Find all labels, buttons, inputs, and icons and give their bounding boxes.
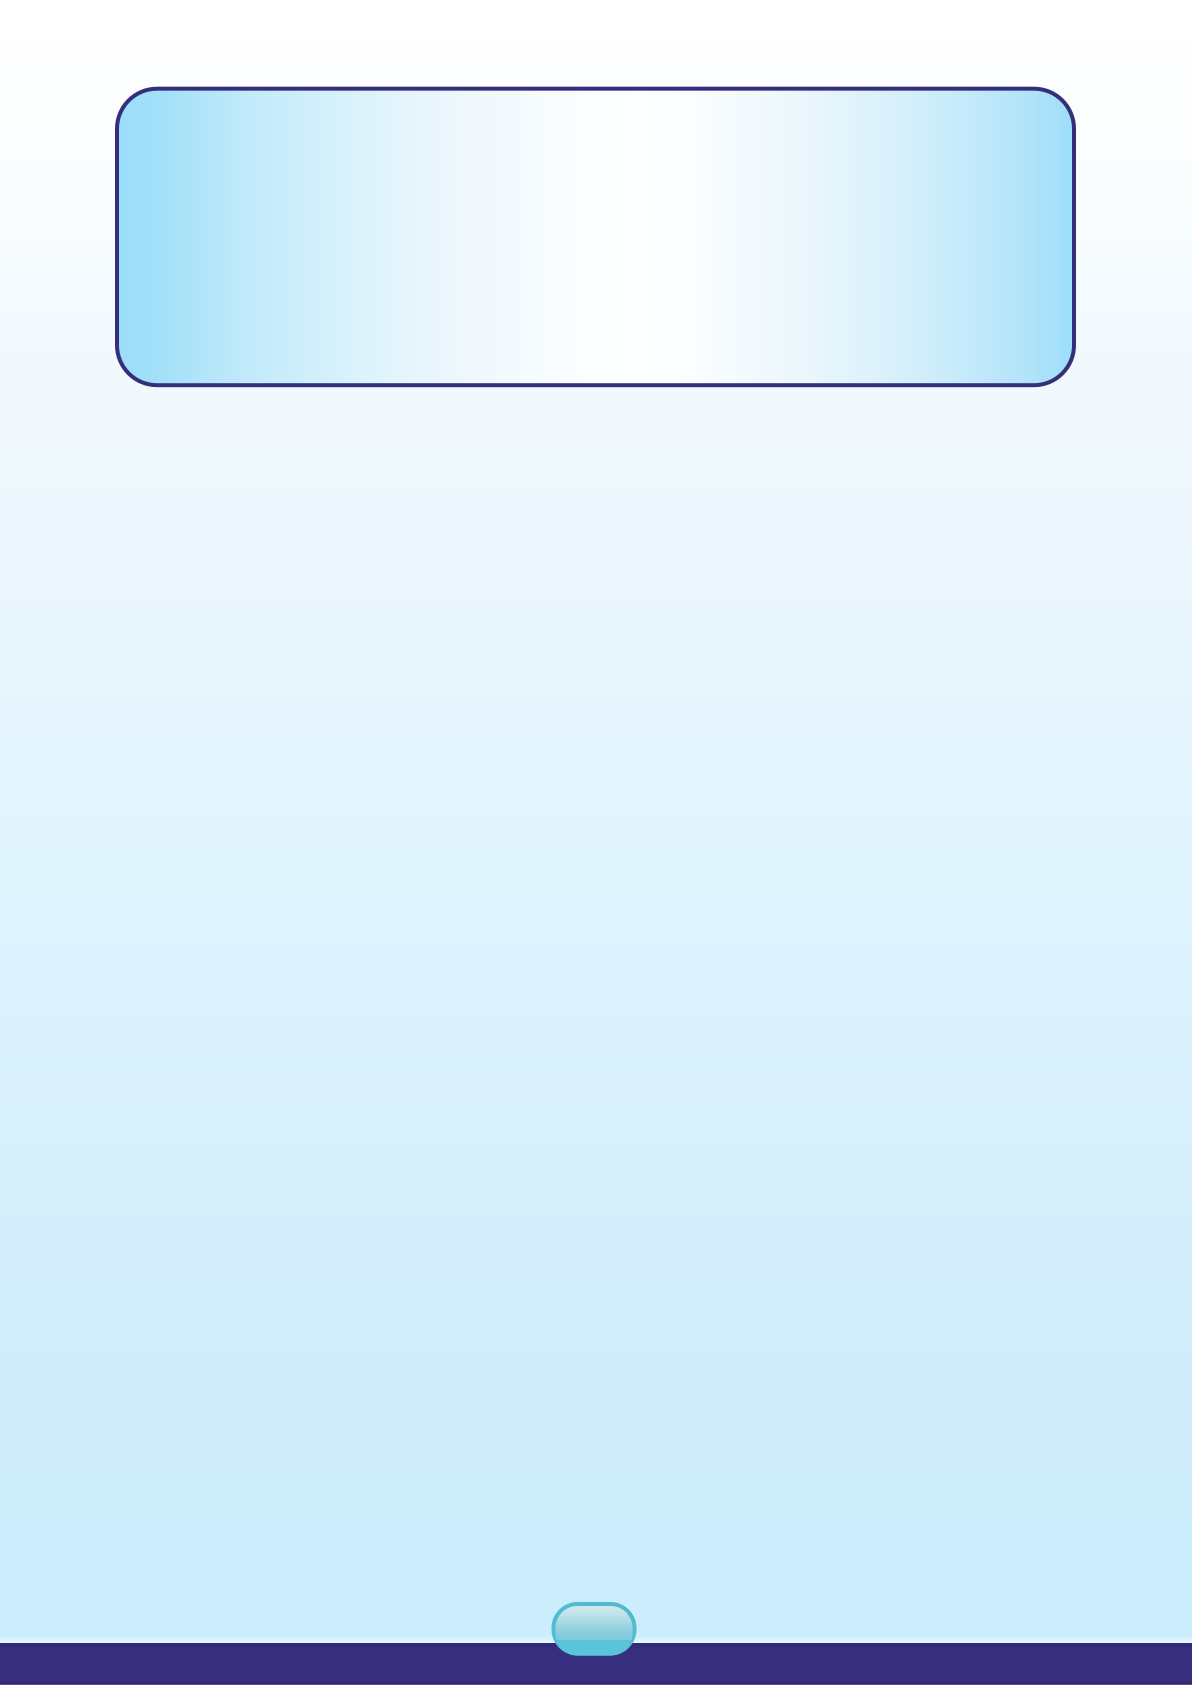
button[interactable]: Card [117, 89, 1074, 385]
button[interactable]: Home indicator [551, 1602, 636, 1655]
